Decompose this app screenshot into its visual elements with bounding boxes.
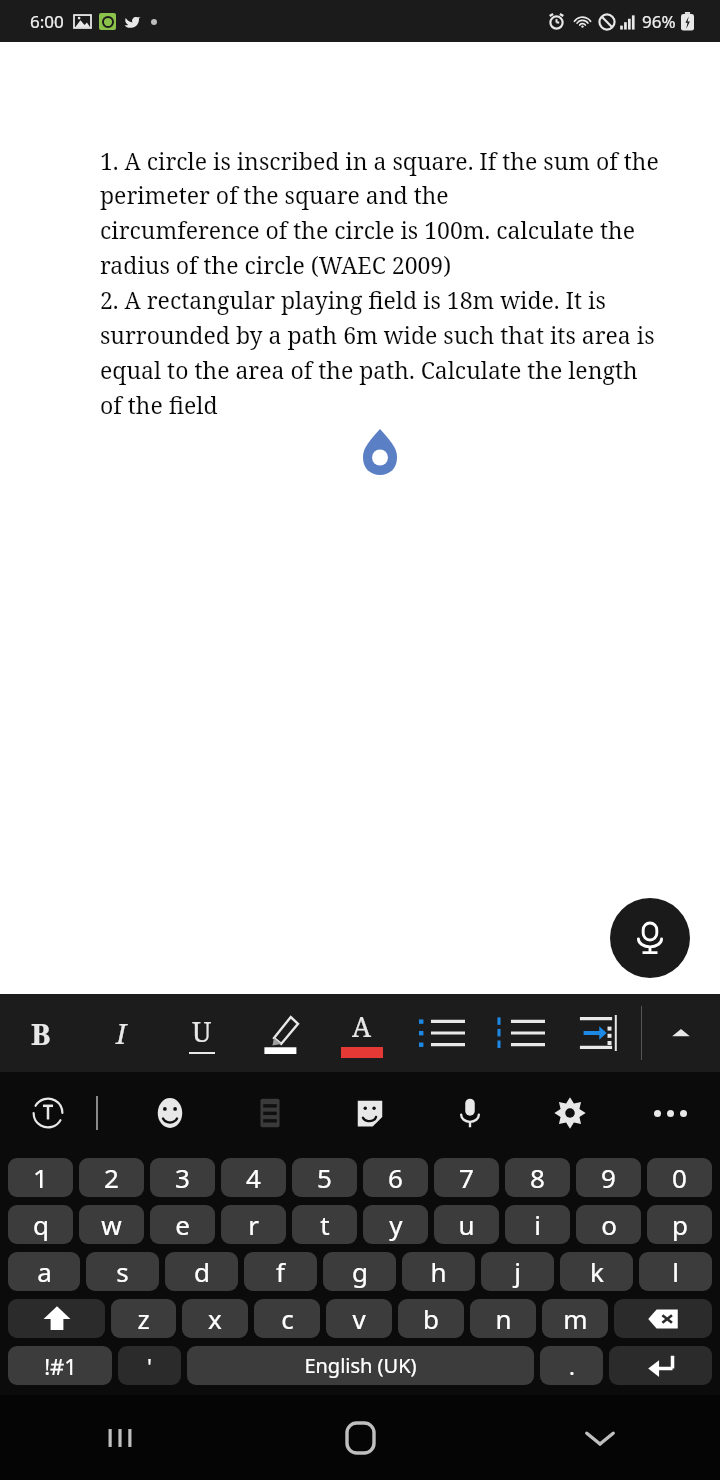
staticText: z [137,1301,150,1336]
button[interactable]: n [470,1299,536,1338]
button[interactable]: l [639,1252,712,1291]
button[interactable]: u [434,1205,499,1244]
staticText: B [31,1014,51,1053]
button[interactable]: c [254,1299,320,1338]
button[interactable]: !#1 [8,1346,112,1385]
staticText: l [672,1254,679,1289]
staticText: 4 [246,1160,261,1195]
button[interactable]: Bold [0,994,81,1072]
staticText: U [192,1013,212,1050]
button[interactable]: 7 [434,1158,499,1197]
button[interactable]: Home [240,1395,480,1480]
staticText: h [430,1254,447,1289]
button[interactable]: Backspace [614,1299,712,1338]
button[interactable]: e [150,1205,215,1244]
staticText: 0 [672,1160,687,1195]
button[interactable]: 5 [292,1158,357,1197]
button[interactable]: s [86,1252,159,1291]
button[interactable]: g [323,1252,396,1291]
button[interactable]: q [8,1205,73,1244]
button[interactable]: 0 [647,1158,712,1197]
button[interactable]: Clipboard [220,1072,320,1154]
staticText: m [563,1301,588,1336]
button[interactable]: x [182,1299,248,1338]
button[interactable]: Emoji [120,1072,220,1154]
staticText: 2 [104,1160,119,1195]
button[interactable]: Recent apps [0,1395,240,1480]
button[interactable]: Italic [81,994,162,1072]
button[interactable]: 2 [79,1158,144,1197]
staticText: 96% [642,10,676,33]
staticText: d [194,1254,210,1289]
staticText: English (UK) [304,1352,417,1379]
button[interactable]: Stickers [320,1072,420,1154]
button[interactable]: 4 [221,1158,286,1197]
button[interactable]: d [165,1252,238,1291]
staticText: g [352,1254,368,1289]
button[interactable]: p [647,1205,712,1244]
button[interactable]: Voice input [610,898,690,978]
button[interactable]: Numbered list [482,994,562,1072]
button[interactable]: Collapse toolbar [642,994,720,1072]
button[interactable]: Enter [609,1346,712,1385]
staticText: q [33,1207,49,1242]
staticText: c [281,1301,294,1336]
button[interactable]: z [111,1299,176,1338]
button[interactable]: Indent [562,994,642,1072]
button[interactable]: y [363,1205,428,1244]
staticText: 9 [601,1160,616,1195]
staticText: 7 [459,1160,474,1195]
staticText: k [590,1254,604,1289]
button[interactable]: 1 [8,1158,73,1197]
button[interactable]: 6 [363,1158,428,1197]
staticText: r [248,1207,259,1242]
button[interactable]: ' [118,1346,181,1385]
button[interactable]: Underline [162,994,242,1072]
staticText: 6 [388,1160,403,1195]
button[interactable]: English (UK) [187,1346,534,1385]
button[interactable]: v [326,1299,392,1338]
button[interactable]: Keyboard settings [520,1072,620,1154]
staticText: p [672,1207,688,1242]
staticText: b [423,1301,439,1336]
button[interactable]: 3 [150,1158,215,1197]
staticText: i [534,1207,541,1242]
button[interactable]: h [402,1252,475,1291]
staticText: 6:00 [30,10,64,33]
button[interactable]: . [540,1346,603,1385]
staticText: w [101,1207,122,1242]
button[interactable]: a [8,1252,80,1291]
button[interactable]: b [398,1299,464,1338]
button[interactable]: m [542,1299,608,1338]
staticText: I [116,1014,127,1052]
button[interactable]: Highlight [242,994,322,1072]
button[interactable]: Hide keyboard [480,1395,720,1480]
button[interactable]: t [292,1205,357,1244]
staticText: t [320,1207,330,1242]
button[interactable]: More options [620,1072,720,1154]
button[interactable]: r [221,1205,286,1244]
button[interactable]: k [560,1252,633,1291]
button[interactable]: j [481,1252,554,1291]
button[interactable]: 9 [576,1158,641,1197]
staticText: e [175,1207,190,1242]
button[interactable]: Voice typing [420,1072,520,1154]
staticText: s [116,1254,129,1289]
button[interactable]: o [576,1205,641,1244]
button[interactable]: Translate [0,1072,96,1154]
button[interactable]: Shift [8,1299,105,1338]
button[interactable]: 8 [505,1158,570,1197]
staticText: a [37,1254,52,1289]
button[interactable]: w [79,1205,144,1244]
button[interactable]: Bulleted list [402,994,482,1072]
staticText: v [352,1301,366,1336]
button[interactable]: i [505,1205,570,1244]
staticText: ' [147,1351,152,1381]
staticText: y [389,1207,403,1242]
staticText: u [458,1207,475,1242]
button[interactable]: f [244,1252,317,1291]
staticText: 8 [530,1160,545,1195]
button[interactable]: Text colour [322,994,402,1072]
staticText: 3 [175,1160,190,1195]
staticText: 1 [33,1160,48,1195]
